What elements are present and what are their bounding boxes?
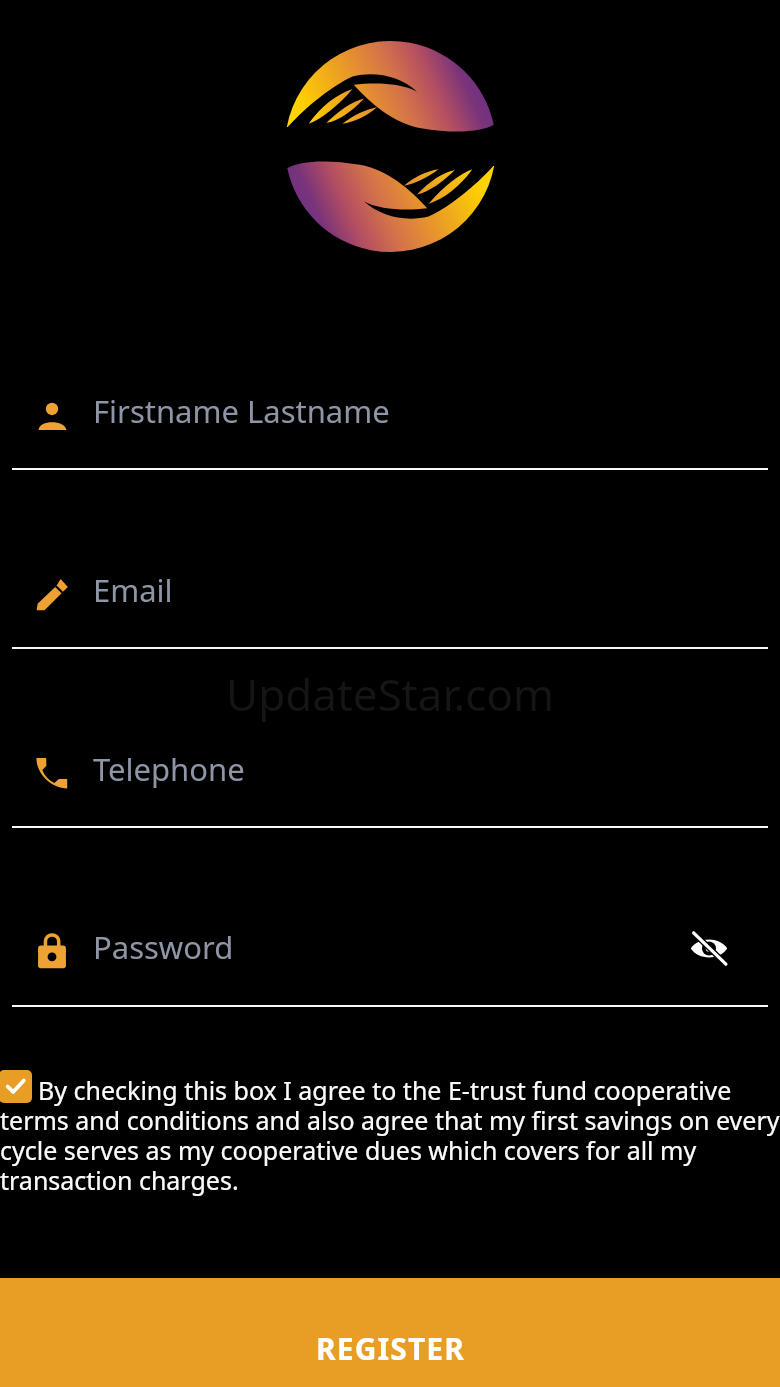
staticText: REGISTER [316, 1328, 465, 1369]
staticText: terms and conditions and also agree that… [0, 1103, 780, 1137]
button[interactable] [0, 548, 780, 632]
button[interactable] [0, 727, 780, 811]
staticText: By checking this box I agree to the E-tr… [38, 1073, 732, 1107]
staticText: Password [93, 926, 234, 968]
button[interactable]: REGISTER [0, 1278, 780, 1387]
staticText: Telephone [93, 748, 245, 790]
staticText: Firstname Lastname [93, 390, 390, 432]
staticText: cycle serves as my cooperative dues whic… [0, 1133, 697, 1167]
staticText: UpdateStar.com [226, 664, 555, 724]
staticText: Email [93, 569, 173, 611]
staticText: transaction charges. [0, 1163, 239, 1197]
button[interactable] [0, 905, 780, 989]
button[interactable]: Show password [666, 923, 752, 973]
button[interactable]: Agree to terms [0, 1070, 32, 1103]
button[interactable] [0, 369, 780, 453]
